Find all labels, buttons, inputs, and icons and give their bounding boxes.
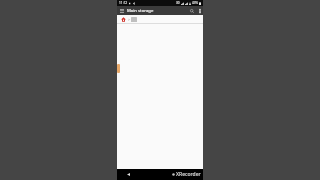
staticText: 43% [192,1,198,5]
button[interactable]: Search [187,6,196,15]
staticText: Main storage [127,8,187,14]
staticText: 11:12 [119,1,128,5]
staticText: > [128,17,130,22]
button[interactable]: More options [196,6,203,15]
staticText: 30 [176,1,180,5]
button[interactable]: Root storage [120,16,127,23]
button[interactable]: Back [125,171,132,178]
button[interactable]: Open navigation drawer [117,6,127,15]
staticText: XRecorder [176,171,201,178]
